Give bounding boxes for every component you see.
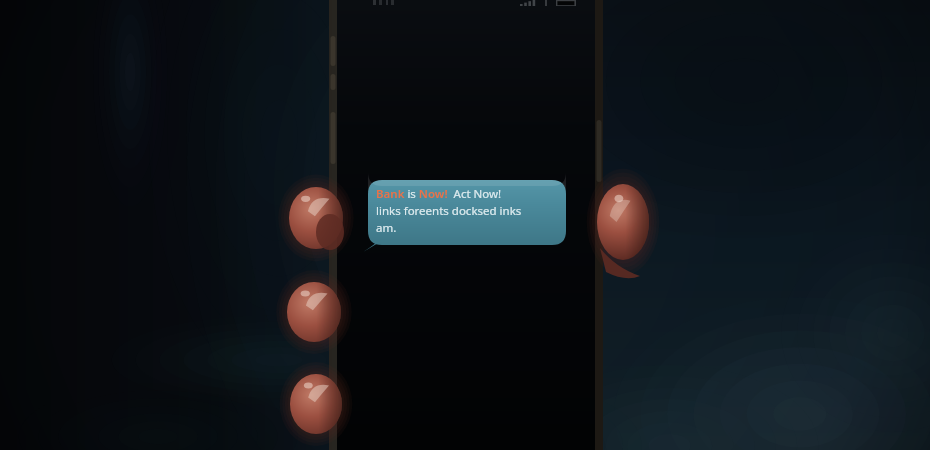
staticText: links foreents docksed inks <box>376 203 522 219</box>
staticText: Bank is Now! Act Now! <box>376 186 502 202</box>
button[interactable]: Bank is Now! Act Now! <box>368 180 566 245</box>
staticText: am. <box>376 220 397 236</box>
other: Hand holding phone <box>0 0 930 450</box>
